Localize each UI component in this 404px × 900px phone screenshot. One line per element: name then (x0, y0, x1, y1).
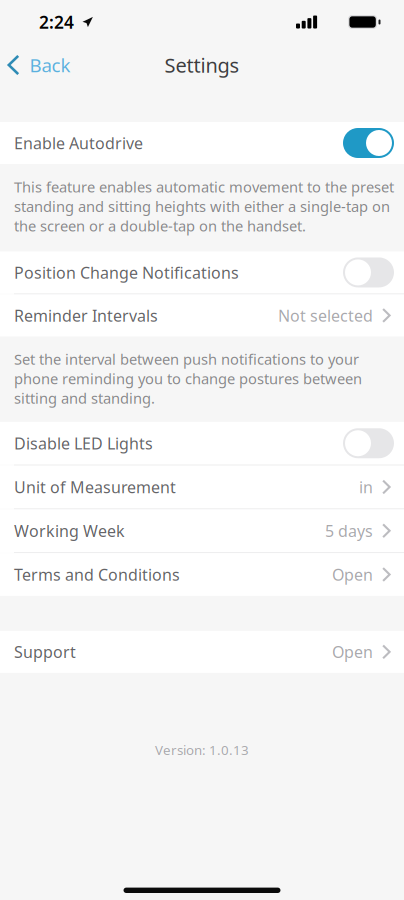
staticText: Disable LED Lights (14, 433, 153, 454)
button[interactable]: Disable LED Lights (0, 422, 404, 465)
staticText: Position Change Notifications (14, 262, 239, 283)
staticText: This feature enables automatic movement … (14, 177, 394, 235)
staticText: Support (14, 641, 76, 662)
staticText: Working Week (14, 520, 125, 541)
staticText: Reminder Intervals (14, 305, 158, 326)
staticText: Enable Autodrive (14, 132, 143, 154)
button[interactable]: Back (0, 45, 82, 85)
staticText: 5 days (325, 520, 373, 541)
staticText: Not selected (278, 305, 373, 326)
button[interactable]: Reminder Intervals (0, 294, 404, 336)
button[interactable]: Unit of Measurement (0, 466, 404, 508)
staticText: 2:24 (39, 10, 74, 33)
staticText: Set the interval between push notificati… (14, 349, 362, 408)
button[interactable]: Enable Autodrive (0, 122, 404, 164)
staticText: Back (29, 53, 70, 77)
button[interactable]: Support (0, 631, 404, 673)
button[interactable]: Terms and Conditions (0, 553, 404, 596)
button[interactable]: Position Change Notifications (0, 251, 404, 293)
staticText: in (359, 476, 373, 498)
button[interactable]: Working Week (0, 509, 404, 552)
staticText: Settings (164, 52, 239, 78)
staticText: Version: 1.0.13 (155, 741, 249, 759)
staticText: Open (332, 641, 373, 662)
staticText: Terms and Conditions (14, 564, 180, 585)
staticText: Unit of Measurement (14, 476, 176, 498)
staticText: Open (332, 564, 373, 585)
